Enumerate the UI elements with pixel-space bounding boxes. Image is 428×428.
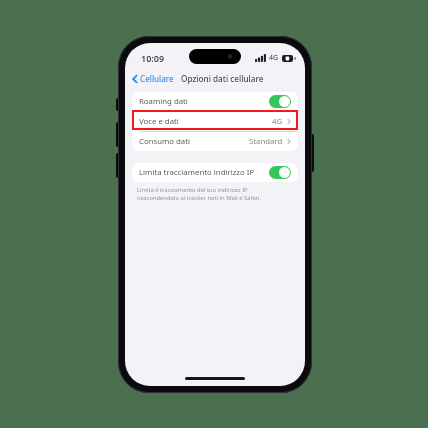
staticText: Opzioni dati cellulare xyxy=(181,73,264,84)
staticText: 4G xyxy=(272,116,283,127)
button[interactable]: Toggle Limita tracciamento indirizzo IP xyxy=(269,166,291,179)
staticText: Standard xyxy=(249,136,283,147)
staticText: Limita tracciamento indirizzo IP xyxy=(139,167,269,178)
staticText: Voce e dati xyxy=(139,116,272,127)
staticText: Limita il tracciamento del tuo indirizzo… xyxy=(137,186,262,202)
staticText: 4G xyxy=(269,53,279,63)
button[interactable]: Limita tracciamento indirizzo IP xyxy=(132,163,298,182)
staticText: 10:09 xyxy=(141,52,165,64)
button[interactable]: Toggle Roaming dati xyxy=(269,95,291,108)
button[interactable]: Voce e dati xyxy=(132,112,298,131)
staticText: Roaming dati xyxy=(139,96,269,107)
button[interactable]: Roaming dati xyxy=(132,92,298,111)
staticText: Cellulare xyxy=(140,73,174,84)
staticText: Consumo dati xyxy=(139,136,249,147)
button[interactable]: Cellulare xyxy=(130,71,176,86)
button[interactable]: Consumo dati xyxy=(132,132,298,151)
